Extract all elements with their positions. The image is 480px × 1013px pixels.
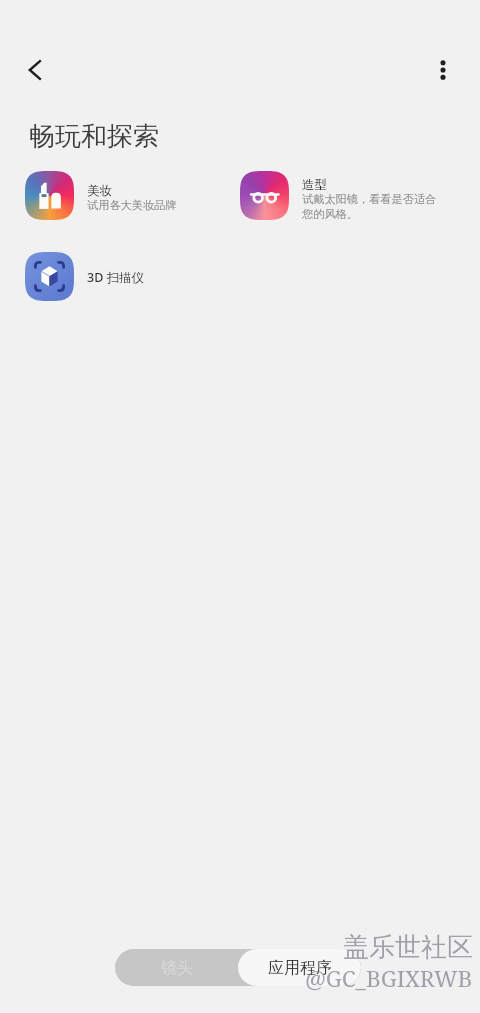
staticText: 造型 — [302, 177, 327, 193]
button[interactable]: 造型 — [240, 171, 438, 223]
staticText: 畅玩和探索 — [29, 120, 159, 153]
button[interactable]: More options — [420, 47, 465, 92]
staticText: @GC_BGIXRWB — [305, 963, 473, 994]
staticText: 盖乐世社区 — [343, 931, 473, 964]
staticText: 应用程序 — [268, 958, 332, 978]
button[interactable]: 3D 扫描仪 — [25, 252, 227, 301]
button[interactable]: 应用程序 — [238, 949, 361, 986]
staticText: 美妆 — [87, 183, 112, 199]
button[interactable]: 镜头 — [115, 949, 238, 986]
button[interactable]: Back — [13, 47, 58, 92]
staticText: 镜头 — [161, 958, 193, 978]
staticText: 试戴太阳镜，看看是否适合您的风格。 — [302, 192, 438, 222]
button[interactable]: 美妆 — [25, 171, 227, 220]
staticText: 3D 扫描仪 — [87, 269, 145, 286]
staticText: 试用各大美妆品牌 — [87, 198, 177, 212]
